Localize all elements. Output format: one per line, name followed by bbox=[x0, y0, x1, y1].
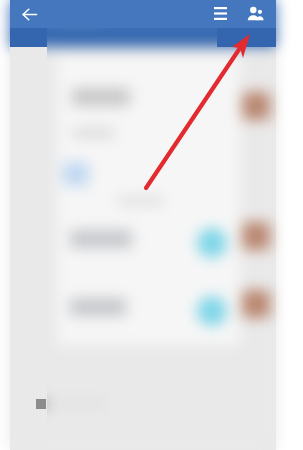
button[interactable]: Back bbox=[15, 0, 44, 29]
button[interactable]: Menu bbox=[207, 0, 234, 27]
button[interactable]: Members bbox=[242, 0, 269, 27]
